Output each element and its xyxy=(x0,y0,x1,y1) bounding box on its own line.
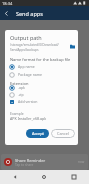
staticText: Tap to share xyxy=(15,163,34,167)
staticText: Output path xyxy=(10,34,42,41)
staticText: Accept xyxy=(32,131,44,136)
button[interactable]: Recents xyxy=(59,170,89,184)
button[interactable]: Package name xyxy=(9,71,78,78)
staticText: Cancel xyxy=(57,131,69,136)
button[interactable]: Back xyxy=(0,170,29,184)
button[interactable]: Cancel xyxy=(51,129,75,138)
staticText: .zip xyxy=(18,92,24,97)
staticText: Send apps xyxy=(16,10,43,17)
button[interactable]: Home xyxy=(29,170,59,184)
button[interactable]: .zip xyxy=(9,91,78,98)
staticText: Name format for the backup file xyxy=(10,57,71,62)
staticText: now xyxy=(78,160,85,164)
staticText: Example xyxy=(10,111,24,116)
button[interactable]: Back xyxy=(0,7,13,20)
staticText: .apk xyxy=(18,85,25,90)
staticText: Add version xyxy=(18,99,38,104)
staticText: Package name xyxy=(18,72,43,77)
button[interactable]: Share Reminder xyxy=(1,154,88,170)
button[interactable]: Choose folder xyxy=(68,42,76,50)
staticText: APK Installer_v68.apk xyxy=(10,116,47,121)
staticText: Extension xyxy=(10,81,29,86)
staticText: 18:34 xyxy=(2,1,13,6)
button[interactable]: .apk xyxy=(9,84,78,91)
button[interactable]: Accept xyxy=(26,129,49,138)
button[interactable]: Add version xyxy=(9,98,78,105)
staticText: /storage/emulated/0/Download/SendApps/ba… xyxy=(10,43,62,52)
staticText: Share Reminder xyxy=(15,158,46,163)
button[interactable]: App name xyxy=(9,63,78,70)
staticText: App name xyxy=(18,64,35,69)
